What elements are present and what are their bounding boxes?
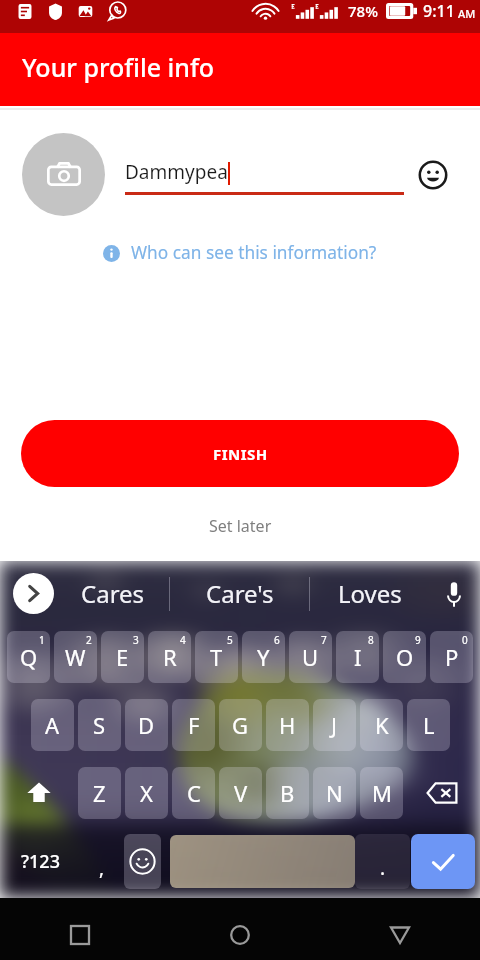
staticText: V (234, 778, 248, 808)
button[interactable]: M (360, 767, 403, 819)
staticText: Dammypea (125, 159, 228, 185)
button[interactable]: E (101, 631, 144, 683)
staticText: Care's (206, 577, 274, 610)
button[interactable]: C (172, 767, 215, 819)
staticText: L (423, 710, 435, 740)
staticText: T (210, 642, 223, 672)
staticText: S (93, 710, 106, 740)
button[interactable]: V (219, 767, 262, 819)
staticText: Who can see this information? (131, 241, 377, 265)
button[interactable]: Who can see this information? (0, 241, 480, 265)
button[interactable]: Y (242, 631, 285, 683)
staticText: Loves (338, 577, 402, 610)
staticText: N (326, 778, 343, 808)
staticText: E (116, 642, 129, 672)
staticText: Cares (81, 577, 145, 610)
staticText: AM (458, 6, 476, 21)
button[interactable]: A (31, 699, 74, 751)
button[interactable]: L (407, 699, 450, 751)
button[interactable]: S (78, 699, 121, 751)
staticText: 9 (415, 633, 421, 647)
button[interactable]: H (266, 699, 309, 751)
button[interactable]: Set later (205, 511, 276, 541)
staticText: Y (257, 642, 270, 672)
staticText: 3 (133, 633, 139, 647)
button[interactable]: ?123 (0, 834, 80, 889)
button[interactable]: Voice input (437, 577, 471, 611)
staticText: 78% (348, 1, 378, 21)
staticText: , (99, 855, 105, 881)
staticText: 0 (462, 633, 468, 647)
button[interactable]: D (125, 699, 168, 751)
button[interactable]: Loves (310, 560, 429, 627)
button[interactable]: X (125, 767, 168, 819)
staticText: G (232, 710, 249, 740)
button[interactable]: F (172, 699, 215, 751)
button[interactable]: B (266, 767, 309, 819)
staticText: U (302, 642, 319, 672)
staticText: B (280, 778, 295, 808)
button[interactable]: N (313, 767, 356, 819)
staticText: K (375, 710, 389, 740)
button[interactable]: , (80, 834, 124, 889)
button[interactable]: Add profile photo (22, 133, 105, 216)
button[interactable]: . (355, 834, 410, 889)
button[interactable]: W (54, 631, 97, 683)
staticText: W (65, 642, 86, 672)
button[interactable]: Q (7, 631, 50, 683)
staticText: O (396, 642, 414, 672)
button[interactable]: T (195, 631, 238, 683)
staticText: . (380, 855, 386, 881)
button[interactable]: Cares (56, 560, 169, 627)
staticText: ?123 (21, 849, 60, 874)
staticText: J (331, 710, 338, 740)
staticText: 2 (86, 633, 92, 647)
button[interactable]: Backspace (403, 767, 480, 819)
button[interactable]: Emoji keyboard (124, 834, 161, 889)
staticText: 7 (321, 633, 327, 647)
button[interactable]: Z (78, 767, 121, 819)
staticText: I (354, 642, 362, 672)
staticText: 6 (274, 633, 280, 647)
staticText: H (279, 710, 296, 740)
staticText: 5 (227, 633, 233, 647)
staticText: D (138, 710, 155, 740)
button[interactable]: R (148, 631, 191, 683)
staticText: FINISH (213, 444, 268, 464)
button[interactable]: Shift (0, 767, 78, 819)
staticText: M (372, 778, 392, 808)
button[interactable]: Expand suggestions (13, 573, 54, 614)
staticText: X (140, 778, 153, 808)
button[interactable]: Care's (170, 560, 309, 627)
button[interactable]: G (219, 699, 262, 751)
button[interactable]: Space (170, 835, 355, 888)
staticText: A (45, 710, 60, 740)
button[interactable]: FINISH (21, 420, 459, 487)
button[interactable]: Enter (411, 834, 475, 889)
staticText: F (188, 710, 200, 740)
staticText: Q (20, 642, 38, 672)
staticText: 8 (368, 633, 374, 647)
button[interactable]: O (383, 631, 426, 683)
staticText: Z (93, 778, 106, 808)
button[interactable]: K (360, 699, 403, 751)
button[interactable]: U (289, 631, 332, 683)
button[interactable]: Home (160, 906, 320, 960)
staticText: R (163, 642, 177, 672)
staticText: 4 (180, 633, 186, 647)
staticText: P (445, 642, 459, 672)
button[interactable]: Emoji (416, 158, 449, 191)
staticText: Your profile info (22, 50, 215, 84)
button[interactable]: J (313, 699, 356, 751)
staticText: C (187, 778, 201, 808)
button[interactable]: Recent apps (0, 906, 160, 960)
button[interactable]: I (336, 631, 379, 683)
staticText: 1 (39, 633, 45, 647)
button[interactable]: Back (320, 906, 480, 960)
button[interactable]: P (430, 631, 473, 683)
staticText: 9:11 (423, 0, 455, 22)
